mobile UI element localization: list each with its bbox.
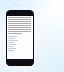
button[interactable]: Logo	[13, 4, 23, 6]
button[interactable]	[6, 10, 34, 66]
